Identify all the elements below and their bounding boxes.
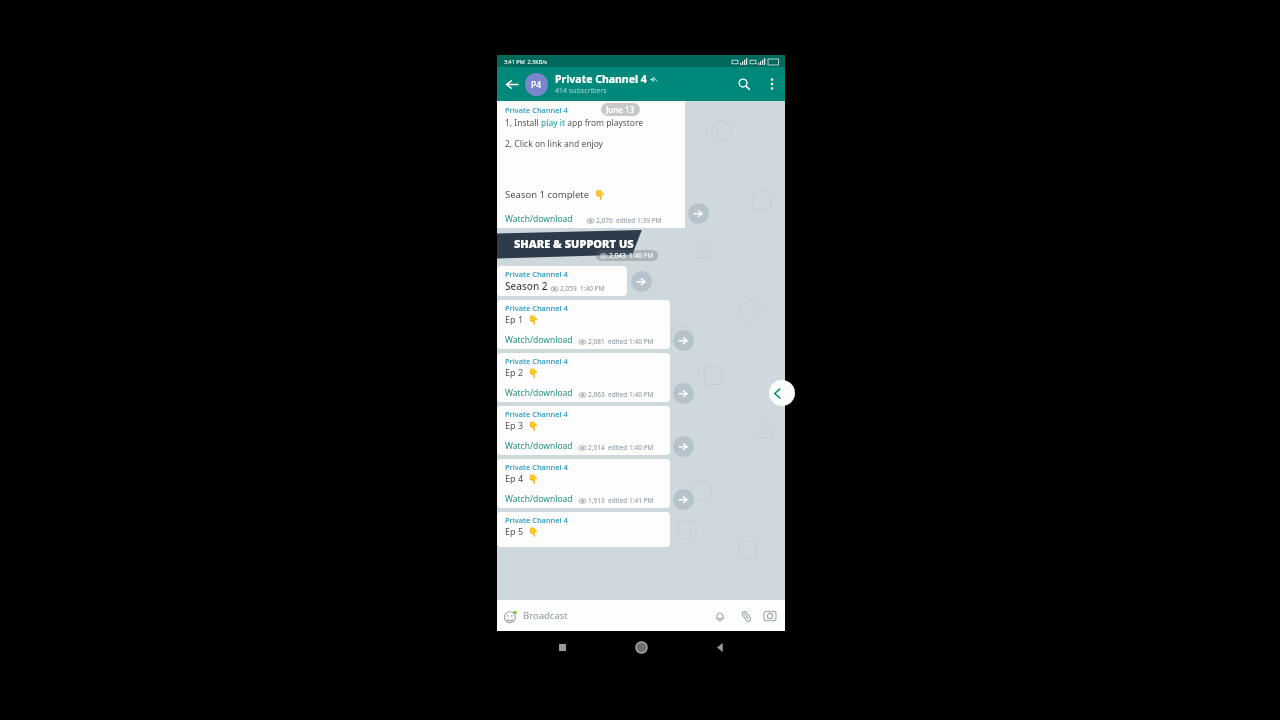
staticText: 2,043 bbox=[609, 251, 626, 260]
button[interactable]: Open panel bbox=[769, 380, 795, 406]
button[interactable]: Emoji bbox=[497, 603, 523, 629]
staticText: edited 1:40 PM bbox=[608, 443, 654, 452]
staticText: 2,059 bbox=[560, 284, 577, 293]
button[interactable]: Home bbox=[627, 633, 655, 661]
staticText: Season 2 bbox=[505, 279, 548, 293]
staticText: SHARE & SUPPORT US bbox=[514, 236, 634, 251]
staticText: Private Channel 4 bbox=[505, 462, 568, 472]
staticText: 414 subscribers bbox=[555, 86, 607, 96]
staticText: 1:40 PM bbox=[580, 284, 605, 293]
button[interactable]: Forward bbox=[631, 271, 652, 292]
button[interactable]: Watch/download bbox=[505, 387, 573, 399]
staticText: Private Channel 4 bbox=[505, 269, 568, 279]
button[interactable]: Private Channel 4 bbox=[555, 72, 729, 96]
staticText: 1,913 bbox=[588, 496, 605, 505]
staticText: Ep 2 👇 bbox=[505, 366, 539, 378]
staticText: Private Channel 4 bbox=[505, 303, 568, 313]
staticText: play it bbox=[541, 117, 565, 129]
staticText: 2,076 bbox=[596, 216, 613, 225]
button[interactable]: Camera bbox=[759, 603, 781, 629]
button[interactable]: Broadcast bbox=[523, 609, 707, 622]
staticText: P4 bbox=[531, 79, 542, 91]
button[interactable]: Private Channel 4 bbox=[497, 101, 685, 228]
button[interactable]: Attach bbox=[733, 603, 759, 629]
staticText: 2,081 bbox=[588, 337, 605, 346]
button[interactable]: Recent apps bbox=[548, 633, 576, 661]
staticText: edited 1:40 PM bbox=[608, 390, 654, 399]
button[interactable]: Forward bbox=[673, 489, 694, 510]
button[interactable]: Watch/download bbox=[505, 334, 573, 346]
staticText: Private Channel 4 bbox=[505, 356, 568, 366]
button[interactable]: Channel avatar bbox=[525, 73, 548, 96]
staticText: app from playstore bbox=[565, 117, 644, 129]
button[interactable]: Back bbox=[497, 70, 525, 98]
staticText: 3:41 PM 2.5KB/s bbox=[504, 58, 547, 65]
button[interactable]: Forward bbox=[688, 203, 709, 224]
button[interactable]: Private Channel 4 bbox=[497, 512, 670, 547]
button[interactable]: Forward bbox=[673, 383, 694, 404]
staticText: 2,063 bbox=[588, 390, 605, 399]
staticText: Ep 5 👇 bbox=[505, 525, 539, 537]
button[interactable]: Watch/download bbox=[505, 493, 573, 505]
button[interactable]: Forward bbox=[673, 436, 694, 457]
staticText: 2,014 bbox=[588, 443, 605, 452]
button[interactable]: Private Channel 4 bbox=[497, 266, 627, 296]
staticText: Private Channel 4 bbox=[505, 409, 568, 419]
staticText: edited 1:39 PM bbox=[616, 216, 662, 225]
staticText: edited 1:41 PM bbox=[608, 496, 654, 505]
button[interactable]: Search bbox=[729, 69, 759, 99]
staticText: Ep 1 👇 bbox=[505, 313, 539, 325]
staticText: 1:40 PM bbox=[629, 251, 654, 260]
button[interactable]: Back bbox=[706, 633, 734, 661]
staticText: 1, Install bbox=[505, 117, 541, 129]
staticText: Private Channel 4 bbox=[505, 515, 568, 525]
button[interactable]: Notifications bbox=[707, 603, 733, 629]
staticText: edited 1:40 PM bbox=[608, 337, 654, 346]
staticText: June 13 bbox=[606, 104, 635, 115]
staticText: Private Channel 4 bbox=[555, 72, 647, 86]
button[interactable]: Private Channel 4 bbox=[497, 406, 670, 455]
button[interactable]: Private Channel 4 bbox=[497, 353, 670, 402]
staticText: Season 1 complete 👇 bbox=[505, 188, 606, 201]
button[interactable]: Watch/download bbox=[505, 440, 573, 452]
button[interactable]: More options bbox=[759, 71, 785, 97]
button[interactable]: Private Channel 4 bbox=[497, 459, 670, 508]
staticText: 2, Click on link and enjoy bbox=[505, 138, 603, 150]
staticText: Ep 3 👇 bbox=[505, 419, 539, 431]
staticText: Ep 4 👇 bbox=[505, 472, 539, 484]
staticText: Private Channel 4 bbox=[505, 105, 568, 115]
button[interactable]: Private Channel 4 bbox=[497, 300, 670, 349]
button[interactable]: Watch/download bbox=[505, 213, 573, 225]
button[interactable]: Forward bbox=[673, 330, 694, 351]
